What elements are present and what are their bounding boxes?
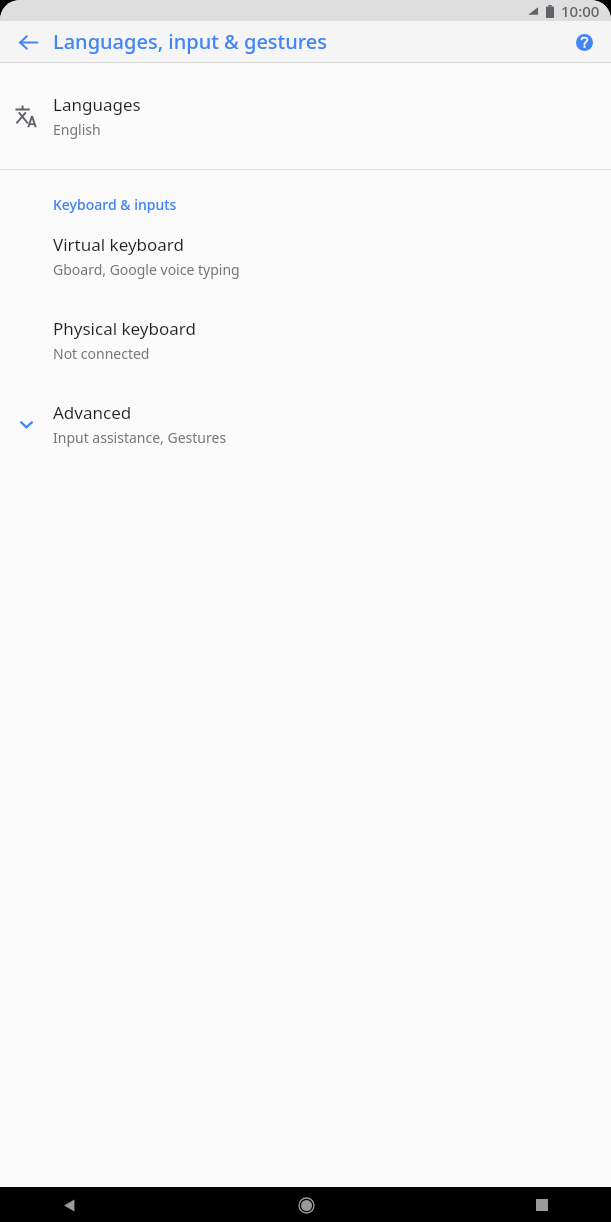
button[interactable]: Back xyxy=(54,1190,84,1220)
staticText: English xyxy=(53,120,101,139)
staticText: Languages, input & gestures xyxy=(53,28,328,55)
staticText: Languages xyxy=(53,93,141,116)
staticText: Keyboard & inputs xyxy=(53,195,177,214)
button[interactable]: Advanced xyxy=(0,401,611,447)
staticText: Physical keyboard xyxy=(53,317,196,340)
button[interactable]: Recent apps xyxy=(527,1190,557,1220)
staticText: 10:00 xyxy=(561,1,600,21)
staticText: Advanced xyxy=(53,401,132,424)
button[interactable]: Physical keyboard xyxy=(0,317,611,363)
button[interactable]: Help xyxy=(566,24,602,60)
button[interactable]: Home xyxy=(291,1190,321,1220)
staticText: Virtual keyboard xyxy=(53,233,185,256)
button[interactable]: Languages xyxy=(0,63,611,169)
button[interactable]: Virtual keyboard xyxy=(0,233,611,279)
staticText: Gboard, Google voice typing xyxy=(53,260,240,279)
button[interactable]: Back xyxy=(8,22,48,62)
staticText: Input assistance, Gestures xyxy=(53,428,227,447)
staticText: Not connected xyxy=(53,344,150,363)
